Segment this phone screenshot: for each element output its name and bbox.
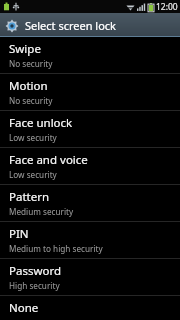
staticText: No security <box>9 95 53 106</box>
button[interactable]: Face unlock <box>0 111 180 147</box>
button[interactable]: None <box>0 296 180 320</box>
button[interactable]: Face and voice <box>0 148 180 184</box>
staticText: Password <box>9 263 62 279</box>
staticText: Swipe <box>9 41 41 57</box>
button[interactable]: Password <box>0 259 180 295</box>
staticText: Medium to high security <box>9 243 103 254</box>
staticText: High security <box>9 280 60 291</box>
staticText: Select screen lock <box>25 18 116 33</box>
staticText: 12:00 <box>156 1 178 13</box>
staticText: Motion <box>9 78 48 94</box>
staticText: No security <box>9 58 53 69</box>
staticText: Face unlock <box>9 115 73 131</box>
staticText: Medium security <box>9 206 74 217</box>
staticText: Low security <box>9 132 57 143</box>
button[interactable]: Motion <box>0 74 180 110</box>
staticText: PIN <box>9 226 29 242</box>
button[interactable]: PIN <box>0 222 180 258</box>
staticText: Low security <box>9 169 57 180</box>
staticText: None <box>9 300 39 316</box>
button[interactable]: Select screen lock <box>0 13 180 37</box>
button[interactable]: Pattern <box>0 185 180 221</box>
button[interactable]: Swipe <box>0 37 180 73</box>
staticText: Pattern <box>9 189 50 205</box>
staticText: Face and voice <box>9 152 88 168</box>
